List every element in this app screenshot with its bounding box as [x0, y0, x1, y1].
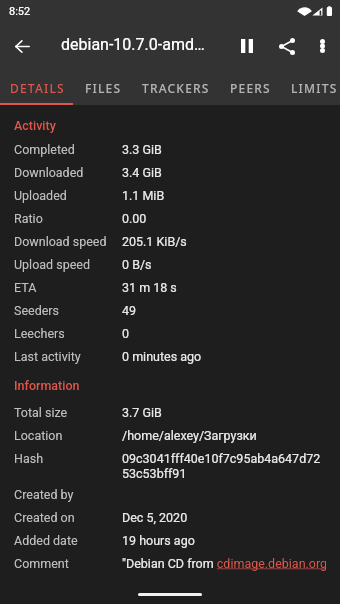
- button[interactable]: Total size: [0, 405, 340, 428]
- staticText: Added date: [14, 533, 122, 548]
- staticText: Leechers: [14, 326, 122, 341]
- button[interactable]: TRACKERS: [132, 70, 220, 105]
- button[interactable]: DETAILS: [0, 70, 75, 105]
- staticText: 0 B/s: [122, 257, 152, 272]
- staticText: 3.3 GiB: [122, 142, 162, 157]
- staticText: Activity: [14, 118, 56, 133]
- staticText: Ratio: [14, 211, 122, 226]
- staticText: Created on: [14, 510, 122, 525]
- staticText: DETAILS: [10, 80, 65, 96]
- button[interactable]: Seeders: [0, 303, 340, 326]
- button[interactable]: Pause: [225, 22, 269, 70]
- staticText: Total size: [14, 405, 122, 420]
- staticText: LIMITS: [291, 80, 338, 96]
- button[interactable]: Hash: [0, 451, 340, 487]
- button[interactable]: PEERS: [220, 70, 281, 105]
- staticText: "Debian CD from cdimage.debian.org": [122, 556, 326, 571]
- staticText: TRACKERS: [142, 80, 210, 96]
- button[interactable]: Last activity: [0, 349, 340, 372]
- staticText: 3.4 GiB: [122, 165, 162, 180]
- button[interactable]: Created by: [0, 487, 340, 510]
- staticText: Information: [14, 378, 80, 393]
- staticText: Last activity: [14, 349, 122, 364]
- staticText: Dec 5, 2020: [122, 510, 188, 525]
- button[interactable]: Added date: [0, 533, 340, 556]
- button[interactable]: Back: [0, 22, 45, 70]
- staticText: Upload speed: [14, 257, 122, 272]
- staticText: 19 hours ago: [122, 533, 195, 548]
- button[interactable]: Leechers: [0, 326, 340, 349]
- staticText: 31 m 18 s: [122, 280, 177, 295]
- button[interactable]: Location: [0, 428, 340, 451]
- button[interactable]: More options: [304, 22, 340, 70]
- staticText: Created by: [14, 487, 122, 502]
- staticText: Hash: [14, 451, 122, 466]
- button[interactable]: ETA: [0, 280, 340, 303]
- button[interactable]: Downloaded: [0, 165, 340, 188]
- staticText: /home/alexey/Загрузки: [122, 428, 257, 443]
- button[interactable]: Uploaded: [0, 188, 340, 211]
- staticText: 8:52: [9, 5, 31, 18]
- staticText: 3.7 GiB: [122, 405, 162, 420]
- staticText: PEERS: [230, 80, 271, 96]
- staticText: Download speed: [14, 234, 122, 249]
- staticText: debian-10.7.0-amd…: [61, 35, 221, 54]
- button[interactable]: Download speed: [0, 234, 340, 257]
- button[interactable]: Created on: [0, 510, 340, 533]
- staticText: 49: [122, 303, 137, 318]
- staticText: Location: [14, 428, 122, 443]
- staticText: ETA: [14, 280, 122, 295]
- staticText: Comment: [14, 556, 122, 571]
- button[interactable]: Comment: [0, 556, 340, 579]
- button[interactable]: Upload speed: [0, 257, 340, 280]
- staticText: 0 minutes ago: [122, 349, 202, 364]
- button[interactable]: Completed: [0, 142, 340, 165]
- staticText: Completed: [14, 142, 122, 157]
- staticText: 0.00: [122, 211, 147, 226]
- button[interactable]: LIMITS: [281, 70, 340, 105]
- staticText: 09c3041fff40e10f7c95ab4a647d7253c53bff91: [122, 451, 326, 481]
- staticText: 0: [122, 326, 130, 341]
- staticText: FILES: [85, 80, 122, 96]
- button[interactable]: Ratio: [0, 211, 340, 234]
- staticText: 205.1 KiB/s: [122, 234, 187, 249]
- staticText: Uploaded: [14, 188, 122, 203]
- staticText: Downloaded: [14, 165, 122, 180]
- staticText: 1.1 MiB: [122, 188, 165, 203]
- staticText: Seeders: [14, 303, 122, 318]
- button[interactable]: Share: [269, 22, 304, 70]
- button[interactable]: FILES: [75, 70, 132, 105]
